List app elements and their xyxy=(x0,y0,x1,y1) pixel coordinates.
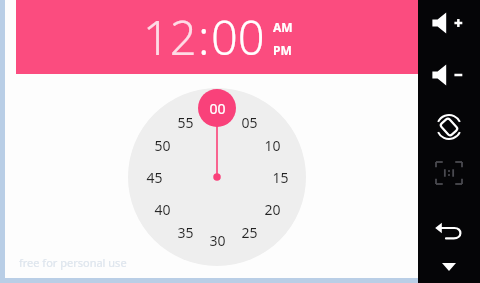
button[interactable]: 12 xyxy=(16,0,418,74)
button[interactable]: 45 xyxy=(140,167,168,187)
staticText: free for personal use xyxy=(19,255,127,270)
button[interactable]: PM xyxy=(273,41,292,59)
button[interactable]: 35 xyxy=(171,222,199,242)
staticText: 10 xyxy=(264,136,281,155)
button[interactable]: Back xyxy=(422,213,476,251)
button[interactable]: 20 xyxy=(258,199,286,219)
staticText: 30 xyxy=(209,231,226,250)
button[interactable]: 00 xyxy=(198,89,236,127)
button[interactable]: 05 xyxy=(235,112,263,132)
button[interactable]: 12 xyxy=(142,5,198,69)
button[interactable]: 10 xyxy=(258,135,286,155)
button[interactable]: Volume down xyxy=(422,56,476,94)
button[interactable]: 55 xyxy=(171,112,199,132)
staticText: 00 xyxy=(209,99,226,118)
staticText: 00 xyxy=(211,5,265,69)
button[interactable]: 30 xyxy=(203,230,231,250)
staticText: 50 xyxy=(154,136,171,155)
staticText: 05 xyxy=(241,113,258,132)
button[interactable]: Minute picker xyxy=(128,88,306,266)
button[interactable]: 40 xyxy=(148,199,176,219)
staticText: 12 xyxy=(143,5,197,69)
button[interactable]: 50 xyxy=(148,135,176,155)
button[interactable]: More xyxy=(429,257,469,277)
staticText: PM xyxy=(273,42,292,58)
staticText: 20 xyxy=(264,200,281,219)
staticText: : xyxy=(198,5,210,69)
button[interactable]: Rotate xyxy=(422,108,476,146)
button[interactable]: 25 xyxy=(235,222,263,242)
button[interactable]: AM xyxy=(273,18,293,36)
staticText: 55 xyxy=(177,113,194,132)
staticText: 25 xyxy=(241,223,258,242)
button[interactable]: Volume up xyxy=(422,4,476,42)
staticText: AM xyxy=(273,19,293,35)
button[interactable]: 00 xyxy=(210,5,266,69)
staticText: 35 xyxy=(177,223,194,242)
button[interactable]: Screenshot xyxy=(422,154,476,192)
staticText: 15 xyxy=(272,168,289,187)
staticText: 40 xyxy=(154,200,171,219)
button[interactable]: 15 xyxy=(266,167,294,187)
staticText: 45 xyxy=(146,168,163,187)
